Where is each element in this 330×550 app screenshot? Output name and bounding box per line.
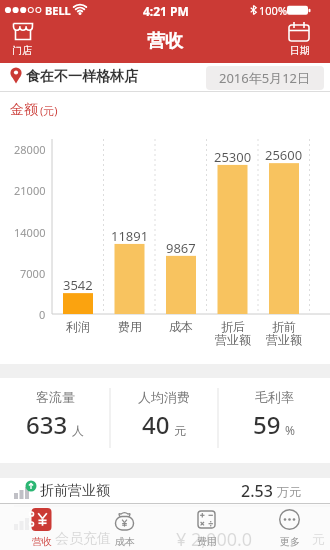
staticText: 2.53 (241, 480, 273, 502)
staticText: 21000 (14, 183, 46, 198)
staticText: 11891 (111, 227, 149, 245)
staticText: 客流量 (36, 389, 75, 405)
staticText: 25300 (214, 148, 252, 166)
staticText: 元 (174, 423, 186, 438)
staticText: 59 (253, 408, 281, 441)
staticText: 元 (312, 531, 325, 547)
staticText: 25600 (265, 146, 303, 164)
staticText: ¥ 2,000.0 (176, 527, 253, 550)
staticText: 会员充值 (55, 530, 111, 548)
staticText: 食在不一样格林店 (26, 68, 138, 86)
button[interactable]: 食在不一样格林店 (0, 63, 330, 92)
button[interactable]: 客流量 (0, 389, 110, 441)
staticText: 折前营业额 (40, 482, 110, 500)
staticText: 2016年5月12日 (219, 69, 311, 87)
staticText: 费用 (197, 535, 217, 548)
staticText: 0 (39, 307, 46, 322)
staticText: 633 (26, 408, 68, 441)
button[interactable]: 折前营业额 (0, 478, 330, 506)
staticText: 9867 (166, 239, 196, 257)
staticText: 利润 (66, 319, 90, 334)
staticText: 营收 (147, 30, 183, 53)
staticText: (元) (40, 103, 58, 118)
staticText: 3542 (63, 276, 93, 294)
staticText: 更多 (280, 535, 300, 548)
button[interactable]: 门店 (6, 20, 50, 63)
button[interactable]: 更多 (248, 503, 330, 550)
staticText: 金额 (10, 101, 38, 119)
staticText: % (285, 422, 295, 438)
staticText: 人 (72, 423, 84, 438)
button[interactable]: 营收 (0, 503, 83, 550)
staticText: 成本 (169, 319, 193, 334)
staticText: 日期 (290, 44, 310, 57)
staticText: 28000 (14, 142, 46, 157)
staticText: 折后 营业额 (215, 319, 251, 348)
staticText: 7000 (20, 266, 46, 281)
staticText: 40 (142, 408, 170, 441)
staticText: 毛利率 (255, 389, 294, 405)
staticText: 门店 (12, 44, 32, 57)
staticText: 营收 (32, 535, 52, 548)
staticText: 14000 (14, 225, 46, 240)
staticText: 成本 (115, 535, 135, 548)
button[interactable]: 日期 (278, 20, 322, 63)
button[interactable]: 成本 (83, 503, 166, 550)
button[interactable]: 毛利率 (218, 389, 330, 441)
staticText: 100% (259, 3, 288, 18)
staticText: 费用 (118, 319, 142, 334)
button[interactable]: 费用 (165, 503, 248, 550)
staticText: 4:21 PM (143, 3, 189, 19)
staticText: 万元 (277, 484, 301, 499)
staticText: 人均消费 (138, 389, 190, 405)
button[interactable]: 人均消费 (110, 389, 218, 441)
button[interactable]: 2016年5月12日 (206, 66, 324, 90)
staticText: 折前 营业额 (266, 319, 302, 348)
staticText: BELL (45, 3, 71, 18)
